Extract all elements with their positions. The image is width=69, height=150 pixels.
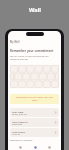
staticText: 18 of 30 [12,133,20,136]
staticText: Keep going! You are closer than you thin… [16,96,53,102]
staticText: Today, 9:00 AM [12,113,27,116]
staticText: Wall [29,6,41,14]
button[interactable]: Home [17,144,23,150]
staticText: Tomorrow [12,123,23,126]
staticText: Remember your commitment [10,49,54,53]
button[interactable]: Profile [46,144,52,150]
staticText: Next check-in [12,120,28,123]
staticText: Start date [12,110,24,113]
button[interactable]: Next check-in [10,118,59,127]
button[interactable]: Total bricks [10,128,59,137]
staticText: Tap on a brick to see the promise you ma… [10,55,49,61]
button[interactable]: Keep going! You are closer than you thin… [10,94,59,104]
button[interactable] [10,65,59,88]
button[interactable]: Start date [10,108,59,117]
button[interactable]: Wall [32,144,38,150]
staticText: Dedication is building [10,139,33,142]
staticText: My Wall [10,40,20,43]
staticText: Total bricks [12,130,25,133]
